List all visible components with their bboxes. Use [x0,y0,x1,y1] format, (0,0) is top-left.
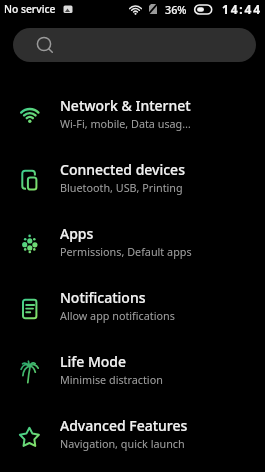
button[interactable]: Connected devices [0,146,265,210]
button[interactable]: Apps [0,210,265,274]
staticText: Apps [60,224,94,243]
staticText: Network & Internet [60,96,191,115]
staticText: Permissions, Default apps [60,244,192,259]
staticText: Notifications [60,288,146,307]
button[interactable]: Advanced Features [0,402,265,466]
staticText: Wi-Fi, mobile, Data usag… [60,116,191,131]
button[interactable]: Network & Internet [0,82,265,146]
staticText: Minimise distraction [60,372,163,387]
staticText: Advanced Features [60,416,188,435]
button[interactable]: Life Mode [0,338,265,402]
staticText: Bluetooth, USB, Printing [60,180,183,195]
staticText: 14:44 [222,1,262,17]
staticText: 36% [165,2,187,17]
staticText: Connected devices [60,160,185,179]
staticText: Navigation, quick launch [60,436,185,451]
staticText: Life Mode [60,352,127,371]
button[interactable] [13,28,256,62]
button[interactable]: Notifications [0,274,265,338]
staticText: Allow app notifications [60,308,175,323]
staticText: No service [4,2,56,16]
